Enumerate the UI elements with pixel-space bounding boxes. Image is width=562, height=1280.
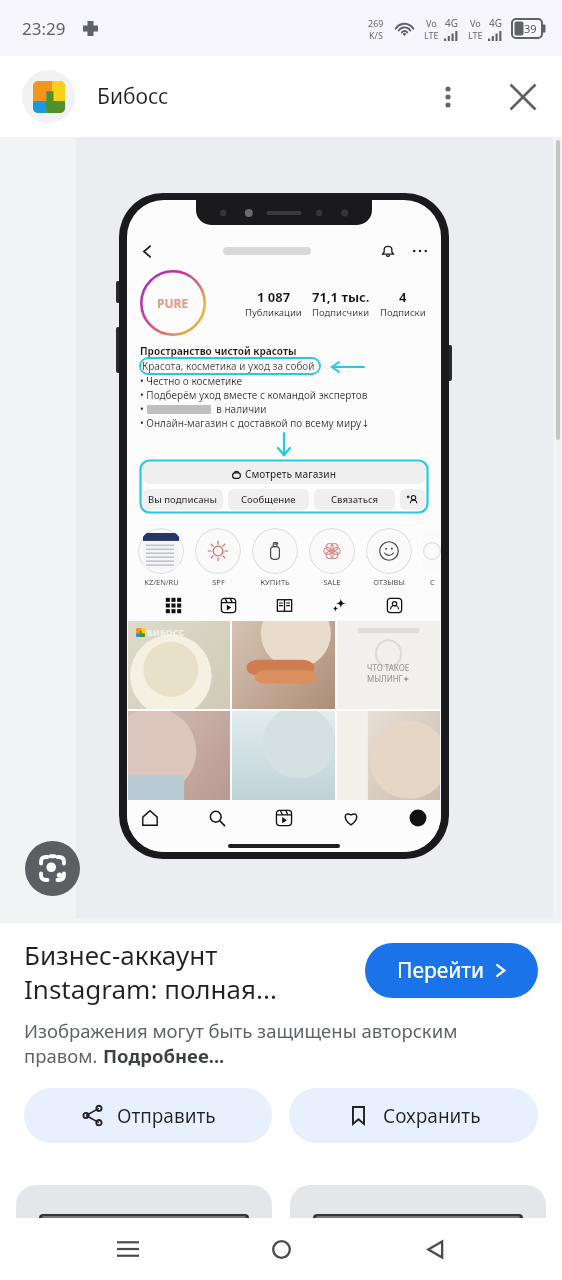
staticText: Подписки — [380, 306, 426, 319]
staticText: 1 087 — [257, 288, 291, 306]
staticText: PURE — [157, 295, 189, 311]
staticText: SALE — [323, 577, 341, 587]
staticText: LTE — [424, 29, 439, 41]
staticText: Бизнес-аккаунт Instagram: полная... — [24, 937, 361, 1006]
button[interactable] — [16, 1185, 272, 1221]
staticText: • Онлайн-магазин с доставкой по всему ми… — [140, 416, 370, 430]
button[interactable]: Home — [255, 1223, 307, 1275]
staticText: 4G — [445, 16, 458, 30]
staticText: Vo — [470, 17, 481, 29]
staticText: ОТЗЫВЫ — [373, 577, 405, 587]
staticText: 71,1 тыс. — [312, 288, 370, 306]
staticText: Пространство чистой красоты — [140, 344, 297, 358]
staticText: в наличии — [211, 402, 267, 416]
button[interactable]: Подробнее... — [103, 1043, 225, 1068]
staticText: • — [140, 402, 147, 416]
staticText: SPF — [212, 577, 225, 587]
button[interactable]: Отправить — [24, 1088, 272, 1143]
staticText: Связаться — [331, 493, 379, 506]
staticText: Публикации — [245, 306, 302, 319]
staticText: 4G — [489, 16, 502, 30]
button[interactable] — [290, 1185, 546, 1221]
button[interactable]: Recents — [102, 1223, 154, 1275]
staticText: 39 — [524, 21, 537, 36]
staticText: • Подберём уход вместе с командой экспер… — [140, 388, 368, 402]
staticText: LTE — [468, 29, 483, 41]
staticText: БИБОСС — [147, 626, 185, 638]
staticText: Бибосс — [97, 82, 169, 111]
staticText: 23:29 — [22, 17, 66, 40]
staticText: Сохранить — [383, 1103, 481, 1129]
staticText: правом. — [24, 1043, 103, 1068]
staticText: 4 — [399, 288, 407, 306]
staticText: Отправить — [117, 1103, 216, 1129]
staticText: 269 — [368, 17, 384, 29]
staticText: ЧТО ТАКОЕ — [367, 662, 410, 673]
button[interactable]: Close — [500, 74, 546, 120]
staticText: КУПИТЬ — [260, 577, 290, 587]
staticText: Подписчики — [312, 306, 370, 319]
staticText: Vo — [426, 17, 437, 29]
button[interactable]: Перейти — [365, 943, 538, 998]
staticText: Перейти — [397, 956, 485, 985]
staticText: Красота, косметика и уход за собой — [142, 359, 315, 373]
staticText: KZ/EN/RU — [144, 577, 179, 587]
staticText: K/S — [369, 29, 383, 41]
button[interactable]: Search with Google Lens — [25, 841, 80, 896]
staticText: С — [430, 577, 435, 587]
button[interactable]: Сохранить — [289, 1088, 538, 1143]
staticText: • Честно о косметике — [140, 374, 242, 388]
staticText: Смотреть магазин — [245, 467, 336, 481]
staticText: МЫЛИНГ✦ — [367, 673, 410, 684]
staticText: Вы подписаны — [148, 493, 218, 506]
staticText: Сообщение — [241, 493, 296, 506]
button[interactable]: Back — [409, 1223, 461, 1275]
button[interactable]: More options — [425, 74, 471, 120]
staticText: Изображения могут быть защищены авторски… — [24, 1018, 458, 1043]
